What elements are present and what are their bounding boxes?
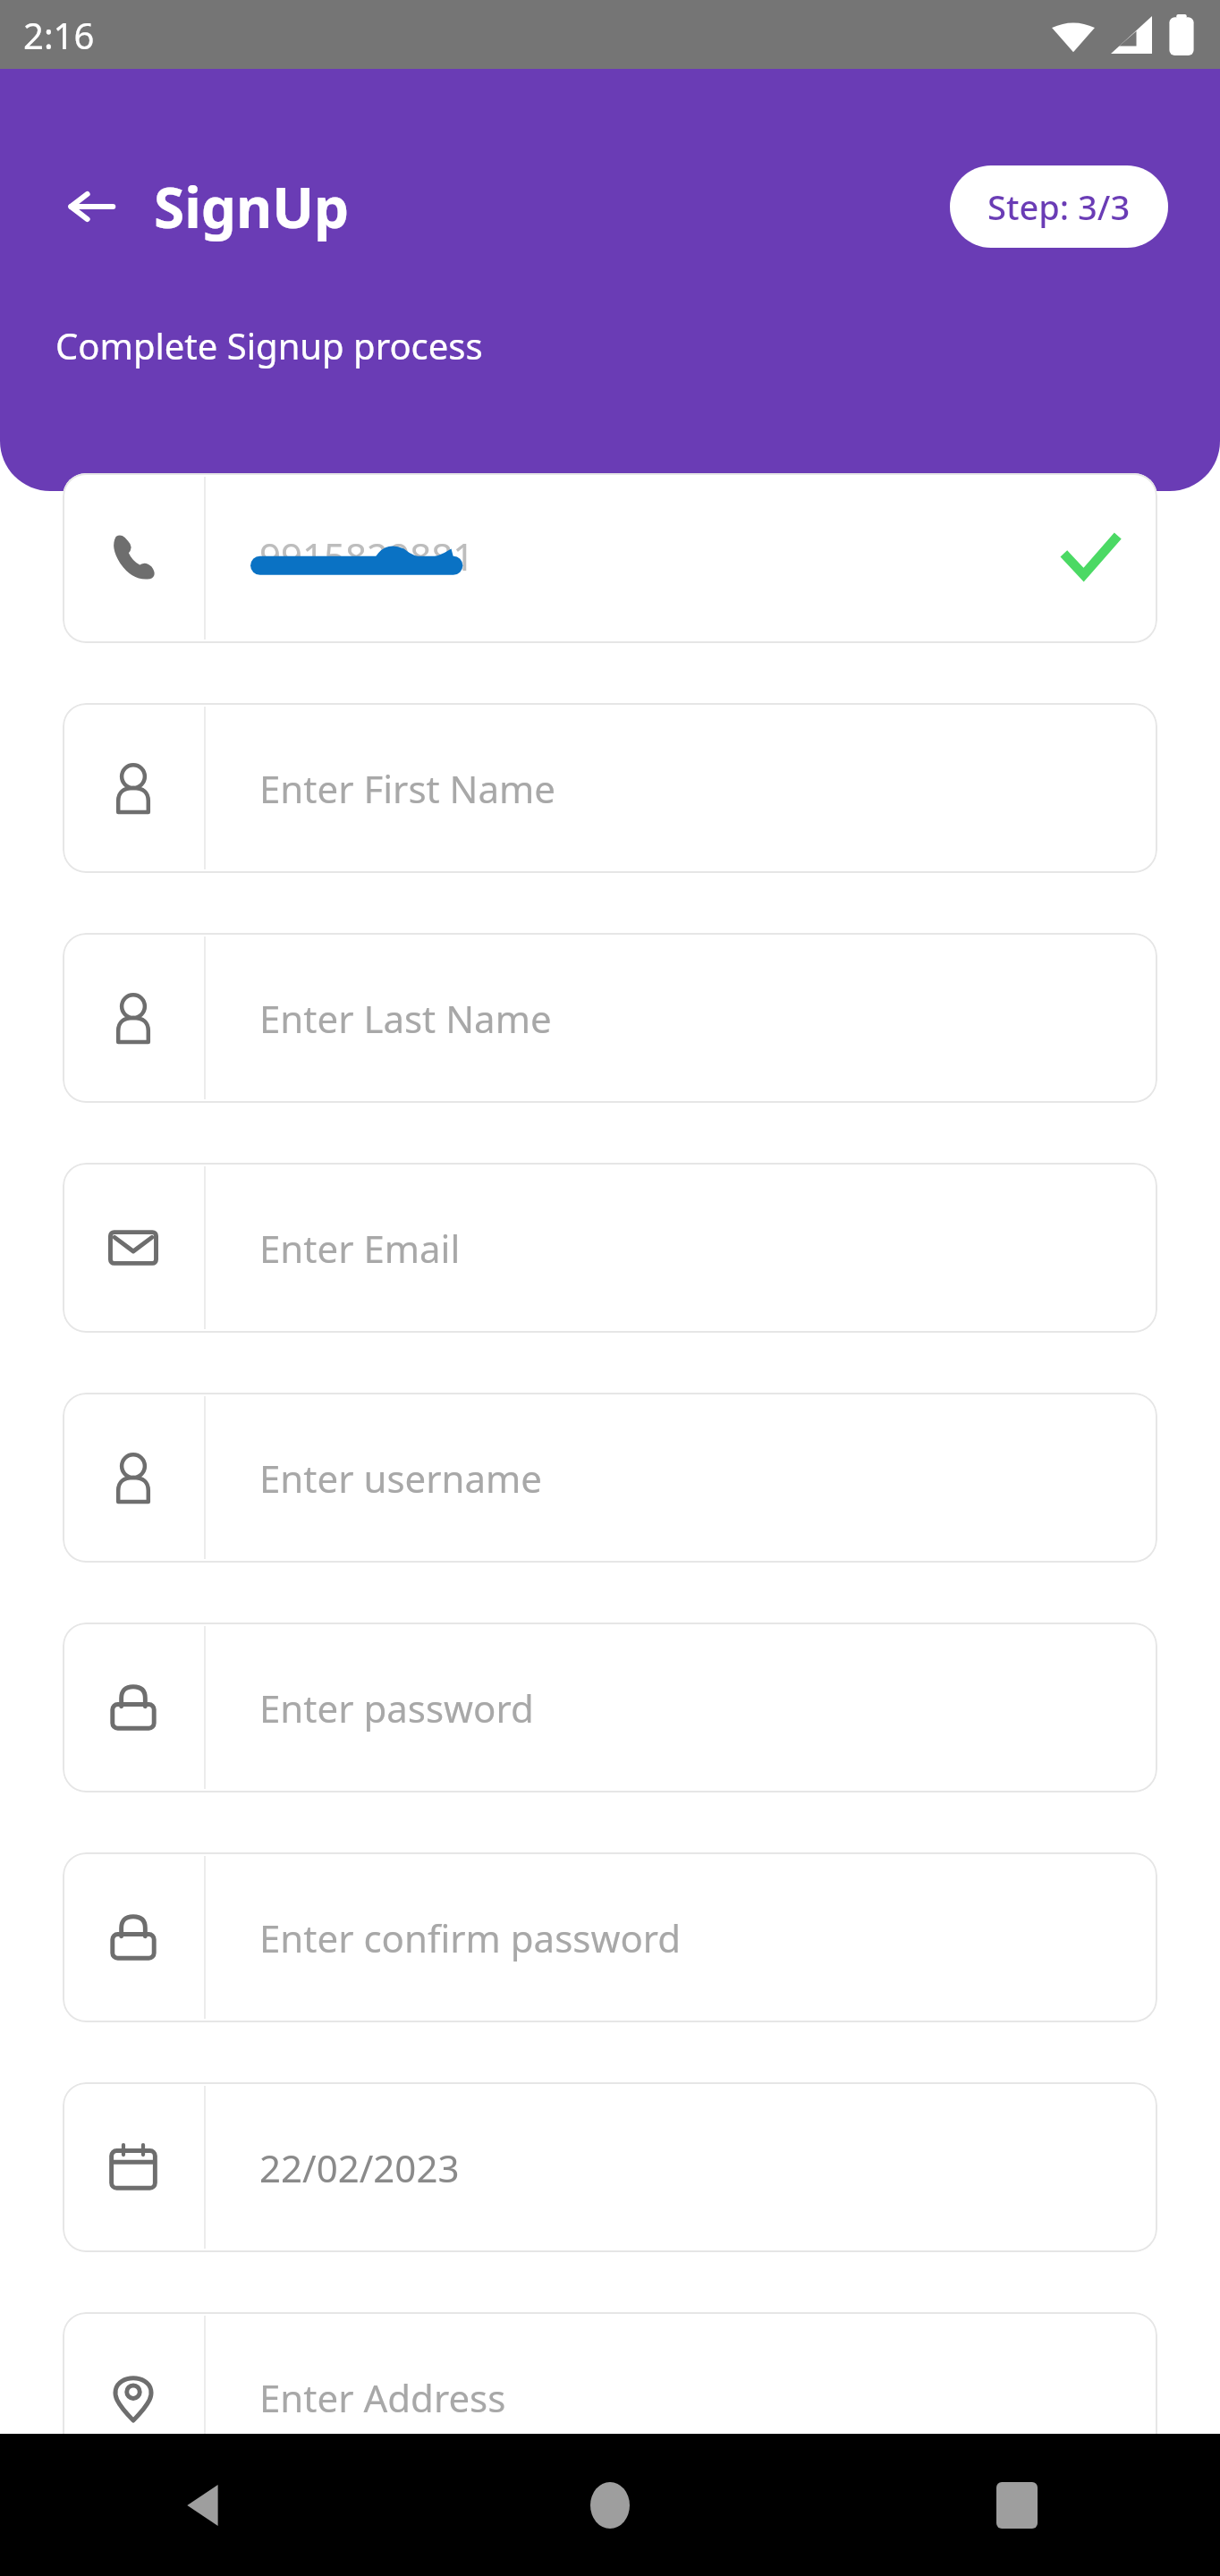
button[interactable]: Back <box>0 2434 406 2576</box>
button[interactable]: Step: 3/3 <box>950 165 1168 248</box>
button[interactable]: Home <box>406 2434 813 2576</box>
staticText: Step: 3/3 <box>987 183 1131 230</box>
staticText: Enter username <box>259 1453 543 1504</box>
staticText: 2:16 <box>23 11 95 59</box>
staticText: 22/02/2023 <box>259 2142 460 2193</box>
button[interactable]: Back <box>54 169 129 244</box>
staticText: Enter confirm password <box>259 1912 682 1963</box>
button[interactable]: Enter Email <box>63 1163 1157 1333</box>
button[interactable]: Enter Last Name <box>63 933 1157 1103</box>
staticText: Complete Signup process <box>55 321 483 369</box>
staticText: Enter Last Name <box>259 993 552 1044</box>
button[interactable]: Enter username <box>63 1393 1157 1563</box>
button[interactable]: Enter First Name <box>63 703 1157 873</box>
button[interactable]: Enter confirm password <box>63 1852 1157 2022</box>
staticText: Enter Address <box>259 2372 506 2423</box>
button[interactable]: Enter Address <box>63 2312 1157 2482</box>
staticText: Enter password <box>259 1682 534 1733</box>
button[interactable]: Enter password <box>63 1623 1157 1792</box>
button[interactable]: Recent apps <box>813 2434 1220 2576</box>
staticText: Enter Email <box>259 1223 461 1274</box>
button[interactable]: 9915829881 <box>63 473 1157 643</box>
staticText: 9915829881 <box>259 530 475 581</box>
staticText: SignUp <box>154 169 350 244</box>
button[interactable]: 22/02/2023 <box>63 2082 1157 2252</box>
staticText: Enter First Name <box>259 763 556 814</box>
